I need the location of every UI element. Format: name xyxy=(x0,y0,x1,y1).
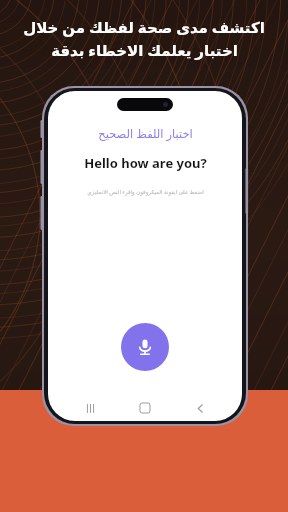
staticText: اكتشف مدى صحة لفظك من خلال xyxy=(23,17,265,37)
staticText: Hello how are you? xyxy=(84,154,207,172)
button[interactable]: Back xyxy=(187,395,213,421)
staticText: اختبار اللفظ الصحيح xyxy=(98,126,193,142)
button[interactable]: Home xyxy=(132,395,158,421)
staticText: اختبار يعلمك الاخطاء بدقة xyxy=(51,40,238,60)
staticText: اضغط على ايقونة الميكروفون واقرء النص ال… xyxy=(87,188,204,195)
button[interactable]: Recent apps xyxy=(77,395,103,421)
button[interactable]: Record pronunciation xyxy=(121,323,169,371)
